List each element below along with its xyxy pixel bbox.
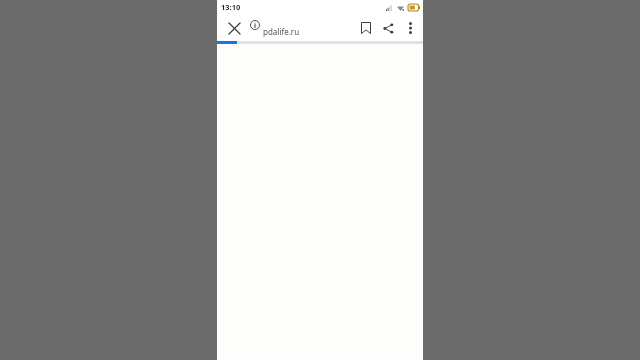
button[interactable]: Share [377, 17, 399, 39]
button[interactable]: Bookmark [355, 17, 377, 39]
button[interactable]: pdalife.ru [249, 14, 300, 41]
staticText: pdalife.ru [263, 26, 300, 37]
button[interactable]: Close [224, 18, 244, 38]
button[interactable]: More options [399, 17, 421, 39]
staticText: 13:10 [221, 2, 241, 12]
